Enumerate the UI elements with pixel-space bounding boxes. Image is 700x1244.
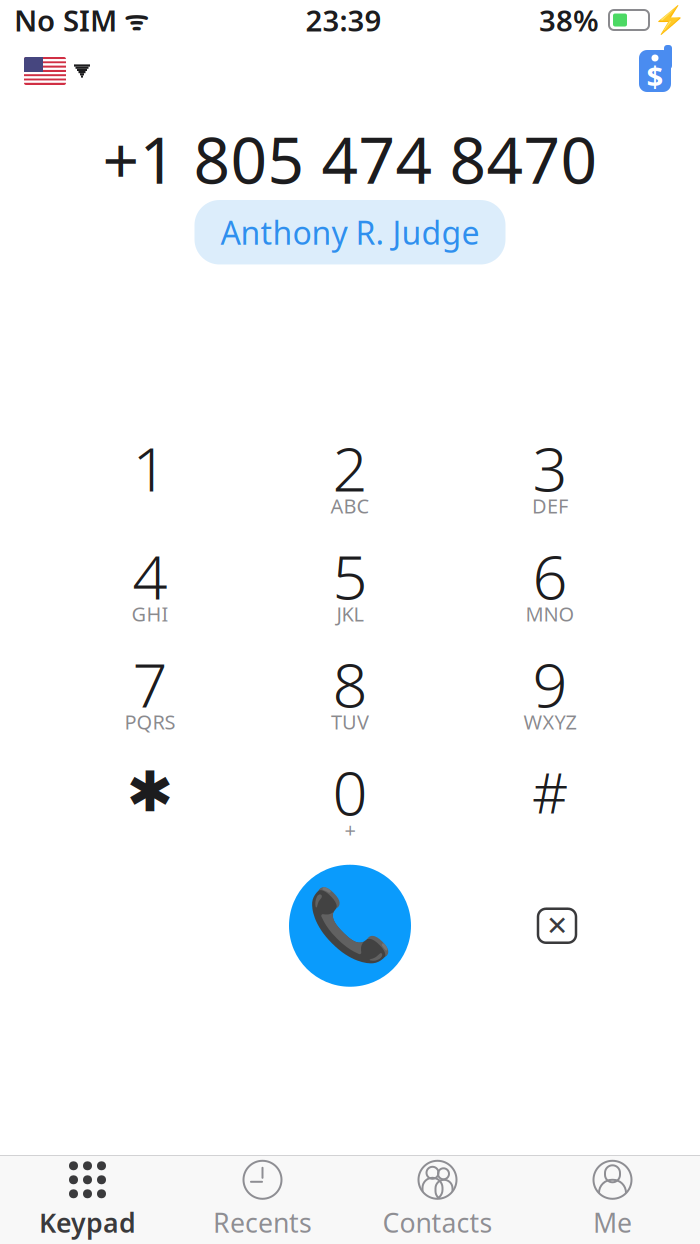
- staticText: WXYZ: [523, 708, 576, 735]
- staticText: ABC: [330, 492, 369, 519]
- button[interactable]: 0: [250, 748, 450, 856]
- staticText: +1 805 474 8470: [102, 116, 597, 201]
- staticText: +: [344, 816, 355, 843]
- button[interactable]: 7: [50, 640, 250, 748]
- button[interactable]: Keypad: [0, 1156, 175, 1244]
- button[interactable]: Country code, United States: [12, 49, 102, 93]
- staticText: JKL: [336, 600, 363, 627]
- button[interactable]: 9: [450, 640, 650, 748]
- button[interactable]: Anthony R. Judge: [194, 200, 505, 264]
- staticText: Me: [593, 1205, 632, 1240]
- button[interactable]: 3: [450, 424, 650, 532]
- button[interactable]: 1: [50, 424, 250, 532]
- staticText: ⚡: [653, 5, 686, 35]
- staticText: 9: [532, 643, 567, 724]
- staticText: Contacts: [382, 1205, 492, 1240]
- button[interactable]: 8: [250, 640, 450, 748]
- button[interactable]: 4: [50, 532, 250, 640]
- staticText: $: [646, 56, 663, 95]
- staticText: ᯤ: [117, 2, 148, 38]
- staticText: 8: [332, 643, 367, 724]
- staticText: ✱: [126, 760, 173, 824]
- staticText: 38%: [539, 0, 599, 39]
- staticText: 1: [132, 427, 167, 508]
- button[interactable]: #: [450, 748, 650, 856]
- staticText: 📞: [307, 886, 393, 965]
- staticText: PQRS: [124, 708, 175, 735]
- staticText: 23:39: [305, 0, 381, 39]
- staticText: 2: [332, 427, 367, 508]
- button[interactable]: Call rates: [622, 45, 688, 97]
- button[interactable]: Contacts: [350, 1156, 525, 1244]
- button[interactable]: Delete: [450, 856, 650, 996]
- button[interactable]: Recents: [175, 1156, 350, 1244]
- button[interactable]: Me: [525, 1156, 700, 1244]
- button[interactable]: 5: [250, 532, 450, 640]
- staticText: Recents: [213, 1205, 312, 1240]
- staticText: TUV: [331, 708, 369, 735]
- staticText: 5: [332, 535, 367, 616]
- staticText: Anthony R. Judge: [220, 211, 479, 253]
- staticText: Keypad: [39, 1205, 136, 1240]
- staticText: DEF: [532, 492, 568, 519]
- staticText: No SIM: [14, 0, 117, 39]
- staticText: 3: [532, 427, 567, 508]
- staticText: 6: [532, 535, 567, 616]
- staticText: MNO: [525, 600, 574, 627]
- staticText: 4: [132, 535, 167, 616]
- staticText: GHI: [131, 600, 168, 627]
- staticText: #: [532, 755, 568, 829]
- staticText: 0: [332, 751, 367, 832]
- button[interactable]: ✱: [50, 748, 250, 856]
- button[interactable]: 2: [250, 424, 450, 532]
- staticText: ✕: [546, 911, 568, 941]
- button[interactable]: Call: [250, 856, 450, 996]
- button[interactable]: 6: [450, 532, 650, 640]
- staticText: 7: [132, 643, 167, 724]
